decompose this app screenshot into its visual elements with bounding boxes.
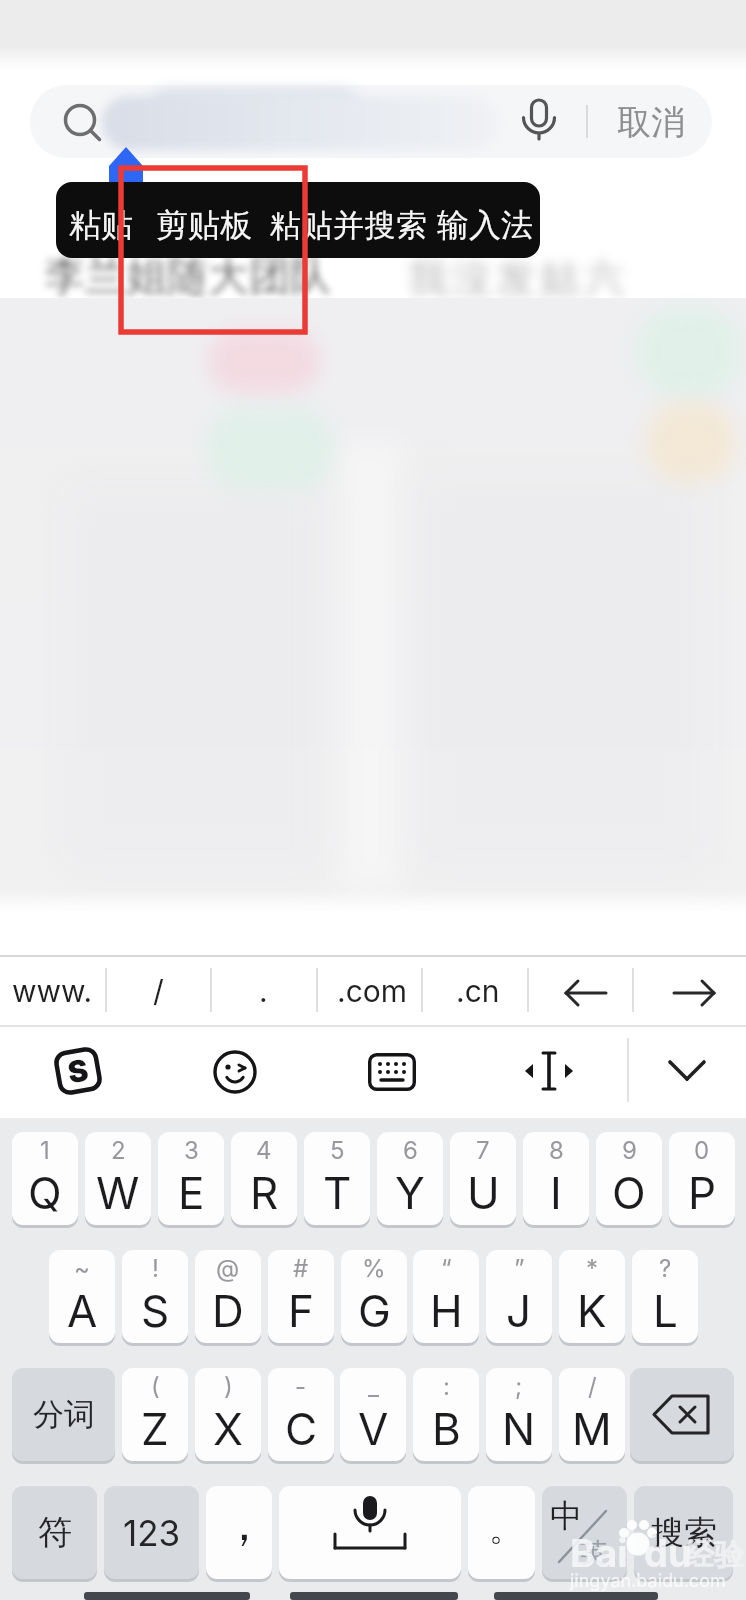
staticText: 我沒发姑六 [406, 253, 626, 303]
button[interactable]: 1 [12, 1132, 78, 1225]
staticText: 符 [38, 1511, 72, 1554]
button[interactable]: @ [195, 1250, 261, 1343]
button[interactable]: . [211, 957, 315, 1025]
button[interactable]: “ [413, 1250, 479, 1343]
staticText: S [65, 1051, 91, 1090]
staticText: 。 [489, 1507, 523, 1550]
button[interactable]: ) [195, 1368, 261, 1461]
button[interactable]: 2 [85, 1132, 151, 1225]
button[interactable] [30, 85, 712, 158]
button[interactable]: : [413, 1368, 479, 1461]
button[interactable] [630, 1368, 734, 1461]
staticText: . [259, 973, 268, 1009]
staticText: 8 [549, 1136, 564, 1165]
button[interactable]: _ [340, 1368, 406, 1461]
button[interactable] [150, 182, 258, 258]
button[interactable] [523, 1050, 575, 1092]
staticText: www. [12, 973, 93, 1009]
staticText: 粘贴并搜索 [270, 206, 428, 245]
button[interactable]: ， [206, 1486, 272, 1579]
staticText: X [213, 1402, 244, 1455]
staticText: P [688, 1166, 717, 1219]
staticText: 123 [123, 1512, 181, 1554]
staticText: 英 [580, 1536, 607, 1570]
staticText: _ [368, 1372, 379, 1401]
staticText: .cn [456, 973, 500, 1009]
button[interactable]: .cn [426, 957, 530, 1025]
button[interactable]: 分词 [12, 1368, 115, 1461]
button[interactable]: 0 [669, 1132, 735, 1225]
staticText: Y [395, 1166, 425, 1219]
staticText: H [430, 1284, 463, 1337]
button[interactable]: # [268, 1250, 334, 1343]
button[interactable]: 搜索 [634, 1486, 733, 1579]
staticText: 0 [694, 1136, 710, 1165]
staticText: * [586, 1254, 599, 1283]
staticText: ， [221, 1496, 267, 1554]
button[interactable]: 123 [104, 1486, 199, 1579]
button[interactable]: 取消 [610, 98, 696, 148]
staticText: S [141, 1284, 170, 1337]
button[interactable]: 符 [12, 1486, 97, 1579]
staticText: J [506, 1284, 532, 1337]
staticText: ! [152, 1254, 159, 1283]
staticText: Z [141, 1402, 169, 1455]
staticText: ? [659, 1254, 672, 1283]
button[interactable]: www. [0, 957, 104, 1025]
button[interactable] [430, 182, 536, 258]
staticText: T [323, 1166, 352, 1219]
staticText: V [358, 1402, 389, 1455]
button[interactable]: S [50, 1043, 106, 1099]
button[interactable] [262, 182, 430, 258]
button[interactable]: % [341, 1250, 407, 1343]
button[interactable]: 中 [542, 1486, 627, 1579]
button[interactable]: 9 [596, 1132, 662, 1225]
staticText: M [572, 1402, 612, 1455]
button[interactable]: 5 [304, 1132, 370, 1225]
button[interactable] [670, 971, 718, 1015]
button[interactable] [562, 971, 610, 1015]
button[interactable] [519, 100, 559, 140]
staticText: 输入法 [437, 205, 533, 245]
button[interactable]: * [559, 1250, 625, 1343]
button[interactable] [279, 1486, 461, 1579]
button[interactable]: ~ [49, 1250, 115, 1343]
staticText: ) [224, 1372, 233, 1401]
button[interactable]: - [268, 1368, 334, 1461]
staticText: E [178, 1166, 205, 1219]
staticText: G [358, 1284, 391, 1337]
button[interactable]: .com [320, 957, 424, 1025]
staticText: 李兰姐随大团队 [44, 251, 331, 303]
staticText: W [96, 1166, 140, 1219]
button[interactable]: ? [632, 1250, 698, 1343]
button[interactable] [60, 182, 150, 258]
staticText: 中 [550, 1496, 582, 1536]
staticText: / [588, 1372, 597, 1401]
staticText: ~ [74, 1254, 90, 1283]
button[interactable] [368, 1053, 416, 1091]
button[interactable]: 7 [450, 1132, 516, 1225]
button[interactable]: 3 [158, 1132, 224, 1225]
staticText: 5 [330, 1136, 345, 1165]
staticText: R [250, 1166, 279, 1219]
staticText: % [362, 1254, 386, 1283]
button[interactable]: ; [486, 1368, 552, 1461]
button[interactable]: 。 [468, 1486, 535, 1579]
button[interactable] [667, 1055, 707, 1085]
staticText: Bai [570, 1530, 628, 1576]
staticText: 4 [256, 1136, 272, 1165]
button[interactable]: 6 [377, 1132, 443, 1225]
staticText: L [653, 1284, 678, 1337]
staticText: C [285, 1402, 318, 1455]
button[interactable]: ! [122, 1250, 188, 1343]
button[interactable] [213, 1050, 257, 1094]
button[interactable]: / [106, 957, 210, 1025]
button[interactable]: / [559, 1368, 625, 1461]
staticText: ; [515, 1372, 523, 1401]
button[interactable]: 8 [523, 1132, 589, 1225]
button[interactable]: ” [486, 1250, 552, 1343]
button[interactable]: 4 [231, 1132, 297, 1225]
staticText: “ [441, 1254, 452, 1283]
button[interactable]: ( [122, 1368, 188, 1461]
staticText: A [67, 1284, 98, 1337]
